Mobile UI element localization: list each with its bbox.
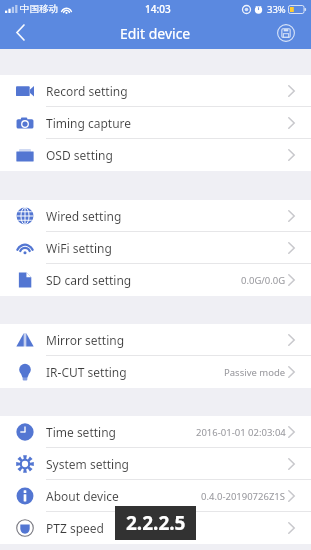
button[interactable]: WiFi setting xyxy=(0,232,311,264)
staticText: Passive mode xyxy=(224,366,286,379)
button[interactable]: PTZ speed xyxy=(0,512,311,544)
staticText: About device xyxy=(46,488,119,504)
button[interactable]: IR-CUT setting xyxy=(0,356,311,388)
button[interactable]: Mirror setting xyxy=(0,324,311,356)
staticText: System setting xyxy=(46,456,129,472)
staticText: SD card setting xyxy=(46,272,132,288)
staticText: 0.4.0-20190726Z1S xyxy=(201,490,286,503)
staticText: OSD setting xyxy=(46,147,113,163)
staticText: 14:03 xyxy=(145,2,171,16)
button[interactable]: Back xyxy=(0,18,40,49)
staticText: 中国移动 xyxy=(20,3,58,15)
staticText: Wired setting xyxy=(46,208,122,224)
staticText: Timing capture xyxy=(46,115,132,131)
staticText: 2016-01-01 02:03:04 xyxy=(196,426,286,439)
staticText: Time setting xyxy=(46,424,116,440)
button[interactable]: 2.2.2.5 xyxy=(115,506,196,540)
button[interactable]: SD card setting xyxy=(0,264,311,296)
button[interactable]: Record setting xyxy=(0,75,311,107)
button[interactable]: Save xyxy=(271,18,311,49)
button[interactable]: About device xyxy=(0,480,311,512)
button[interactable]: Wired setting xyxy=(0,200,311,232)
staticText: 33% xyxy=(267,3,286,16)
staticText: Edit device xyxy=(120,24,191,43)
button[interactable]: OSD setting xyxy=(0,139,311,171)
staticText: Record setting xyxy=(46,83,128,99)
staticText: 2.2.2.5 xyxy=(126,510,186,536)
staticText: 0.0G/0.0G xyxy=(241,274,286,287)
staticText: IR-CUT setting xyxy=(46,364,127,380)
staticText: WiFi setting xyxy=(46,240,112,256)
staticText: Mirror setting xyxy=(46,332,125,348)
staticText: PTZ speed xyxy=(46,520,104,536)
button[interactable]: Timing capture xyxy=(0,107,311,139)
button[interactable]: Time setting xyxy=(0,416,311,448)
button[interactable]: System setting xyxy=(0,448,311,480)
